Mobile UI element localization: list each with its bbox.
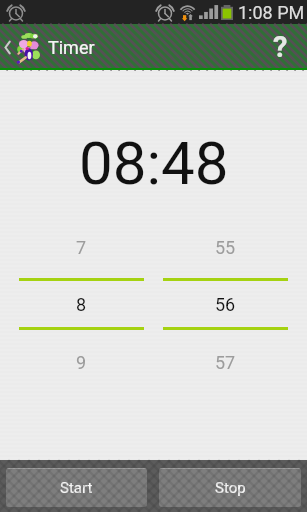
staticText: 55: [215, 237, 236, 258]
button[interactable]: Navigate up: [0, 24, 126, 70]
staticText: Start: [60, 479, 93, 497]
button[interactable]: 55: [163, 216, 288, 394]
staticText: Stop: [215, 479, 246, 497]
staticText: 8: [76, 294, 87, 315]
button[interactable]: Start: [6, 468, 147, 507]
staticText: 7: [76, 237, 87, 258]
staticText: Timer: [48, 37, 95, 58]
staticText: 56: [215, 294, 236, 315]
button[interactable]: Stop: [159, 468, 301, 507]
button[interactable]: Help: [253, 24, 307, 70]
button[interactable]: 7: [19, 216, 144, 394]
staticText: 9: [76, 352, 87, 373]
staticText: 57: [215, 352, 236, 373]
staticText: 1:08 PM: [238, 2, 305, 23]
staticText: 08:48: [79, 128, 229, 198]
staticText: ?: [273, 30, 288, 64]
